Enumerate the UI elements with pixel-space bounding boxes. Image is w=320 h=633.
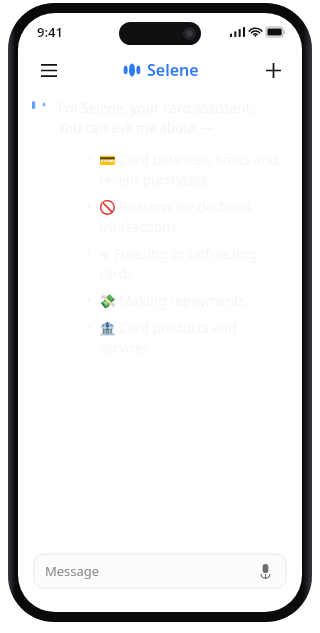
button[interactable]: Message xyxy=(34,554,286,588)
staticText: I'm Selene, your card assistant. You can… xyxy=(58,99,254,137)
staticText: 9:41 xyxy=(37,23,63,41)
staticText: 🚫 Reasons for declined transactions xyxy=(99,198,284,236)
staticText: Selene xyxy=(147,59,199,81)
staticText: 🏦 Card products and services xyxy=(99,319,284,357)
staticText: Message xyxy=(45,562,255,580)
button[interactable]: Voice input xyxy=(255,561,275,581)
button[interactable]: Menu xyxy=(32,53,66,87)
staticText: 💳 Card balances, limits and recent purch… xyxy=(99,151,284,189)
staticText: 💸 Making repayments xyxy=(99,292,246,310)
button[interactable]: New chat xyxy=(257,54,289,86)
